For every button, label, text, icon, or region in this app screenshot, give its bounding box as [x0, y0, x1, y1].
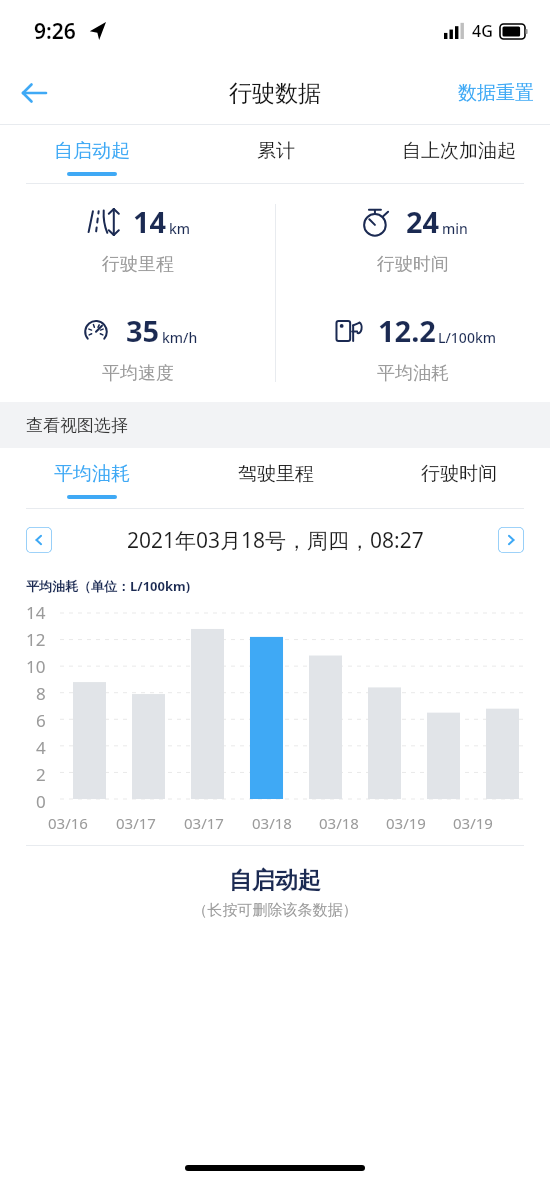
- staticText: 0: [36, 790, 46, 813]
- staticText: 2: [36, 763, 46, 786]
- button[interactable]: Next: [498, 527, 524, 553]
- staticText: 平均油耗: [377, 362, 449, 385]
- staticText: 03/19: [453, 813, 493, 833]
- staticText: 行驶时间: [377, 253, 449, 276]
- staticText: 平均速度: [102, 362, 174, 385]
- staticText: 35: [126, 311, 160, 350]
- staticText: 24: [406, 202, 440, 241]
- staticText: 12.2: [378, 311, 436, 350]
- staticText: 累计: [257, 139, 295, 163]
- staticText: km/h: [162, 328, 198, 347]
- staticText: 驾驶里程: [238, 462, 314, 486]
- staticText: 03/19: [386, 813, 426, 833]
- button[interactable]: 驾驶里程: [184, 448, 367, 508]
- staticText: 03/16: [48, 813, 88, 833]
- staticText: 行驶里程: [102, 253, 174, 276]
- button[interactable]: 14: [0, 184, 275, 293]
- staticText: 03/18: [319, 813, 359, 833]
- staticText: min: [442, 219, 468, 238]
- button[interactable]: Back: [10, 69, 58, 117]
- staticText: 10: [26, 655, 46, 678]
- staticText: 行驶数据: [229, 79, 321, 108]
- staticText: 2021年03月18号，周四，08:27: [127, 526, 424, 555]
- staticText: L/100km: [438, 328, 496, 347]
- staticText: （长按可删除该条数据）: [0, 901, 550, 920]
- staticText: 平均油耗: [54, 462, 130, 486]
- staticText: 12: [26, 628, 46, 651]
- button[interactable]: 平均油耗: [0, 448, 184, 508]
- button[interactable]: 累计: [184, 125, 367, 183]
- staticText: 4G: [472, 20, 493, 42]
- button[interactable]: 数据重置: [452, 71, 540, 115]
- button[interactable]: 行驶时间: [367, 448, 550, 508]
- staticText: 自上次加油起: [402, 139, 516, 163]
- staticText: km: [169, 219, 191, 238]
- staticText: 4: [36, 736, 46, 759]
- staticText: 平均油耗（单位：L/100km): [26, 577, 191, 595]
- button[interactable]: 12.2: [275, 293, 550, 402]
- button[interactable]: 35: [0, 293, 275, 402]
- button[interactable]: 自上次加油起: [367, 125, 550, 183]
- staticText: 03/17: [184, 813, 224, 833]
- button[interactable]: 自启动起: [0, 125, 184, 183]
- staticText: 9:26: [34, 17, 76, 46]
- staticText: 6: [36, 709, 46, 732]
- staticText: 自启动起: [54, 139, 130, 163]
- staticText: 数据重置: [458, 81, 534, 105]
- staticText: 8: [36, 682, 46, 705]
- staticText: 03/17: [116, 813, 156, 833]
- staticText: 查看视图选择: [26, 415, 128, 436]
- staticText: 14: [26, 601, 46, 624]
- staticText: 自启动起: [0, 866, 550, 895]
- staticText: 03/18: [252, 813, 292, 833]
- button[interactable]: Previous: [26, 527, 52, 553]
- staticText: 14: [133, 202, 167, 241]
- button[interactable]: 24: [275, 184, 550, 293]
- staticText: 行驶时间: [421, 462, 497, 486]
